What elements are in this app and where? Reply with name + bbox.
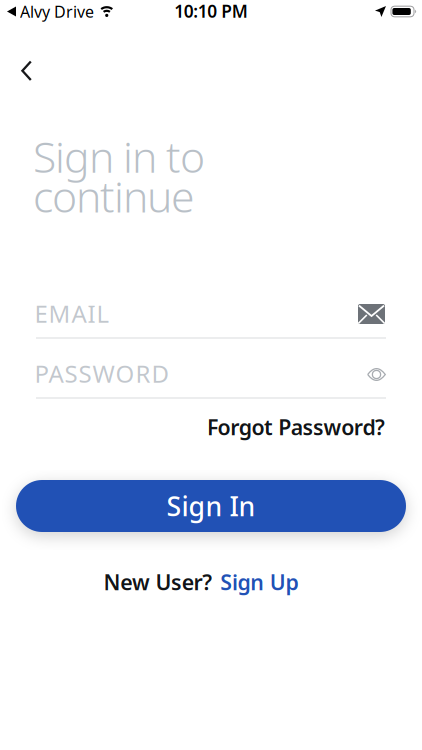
staticText: Sign in to — [33, 128, 205, 184]
staticText: EMAIL — [34, 298, 116, 329]
button[interactable]: Sign Up — [220, 568, 298, 596]
button[interactable]: Sign In — [16, 480, 406, 532]
button[interactable] — [11, 51, 41, 90]
staticText: 10:10 PM — [174, 0, 248, 22]
staticText: New User? — [104, 568, 212, 596]
staticText: PASSWORD — [34, 358, 176, 389]
staticText: Sign Up — [220, 568, 298, 596]
staticText: Sign In — [166, 488, 255, 524]
staticText: continue — [33, 167, 195, 224]
button[interactable]: Forgot Password? — [207, 413, 385, 441]
staticText: Alvy Drive — [20, 1, 94, 22]
staticText: Forgot Password? — [207, 413, 385, 441]
